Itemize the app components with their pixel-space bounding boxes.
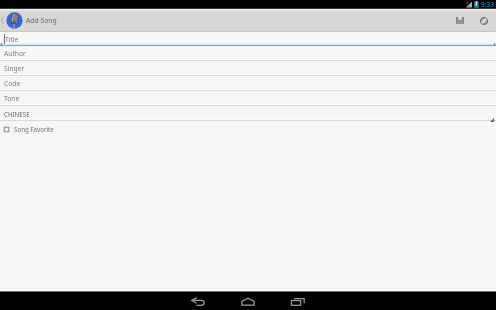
button[interactable]: Singer [0,61,496,76]
staticText: 9:33 [481,0,495,9]
staticText: Title [5,35,19,44]
button[interactable]: CHINESE [0,106,496,121]
button[interactable]: Navigate up, Add Song [0,9,57,32]
button[interactable]: Song Favorite [0,121,496,136]
staticText: CHINESE [4,110,30,118]
button[interactable]: Tone [0,91,496,106]
staticText: Tone [4,94,20,103]
staticText: Code [4,79,21,88]
button[interactable]: Code [0,76,496,91]
staticText: Singer [4,64,25,73]
button[interactable]: Recent apps [273,292,323,310]
button[interactable]: Title [0,32,496,46]
staticText: Add Song [26,16,57,25]
button[interactable]: Author [0,46,496,61]
button[interactable]: Back [173,292,223,310]
staticText: Author [4,49,26,58]
staticText: Song Favorite [14,125,54,133]
button[interactable]: Save [447,9,472,32]
button[interactable]: Home [223,292,273,310]
button[interactable]: Cancel [472,9,496,32]
